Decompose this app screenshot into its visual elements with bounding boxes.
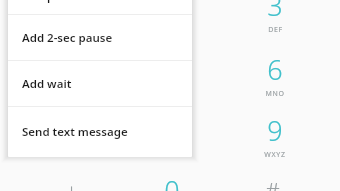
staticText: 9	[267, 112, 283, 149]
staticText: #	[265, 175, 280, 191]
staticText: Add wait	[22, 76, 72, 92]
staticText: 3	[267, 0, 283, 24]
staticText: Add 2-sec pause	[22, 30, 113, 46]
button[interactable]: 0	[164, 172, 180, 191]
button[interactable]: #	[265, 175, 280, 191]
button[interactable]: Send text message	[8, 107, 192, 156]
staticText: +	[65, 176, 78, 191]
staticText: MNO	[265, 89, 285, 97]
button[interactable]: +	[65, 176, 78, 191]
staticText: WXYZ	[264, 150, 286, 158]
button[interactable]: Add wait	[8, 61, 192, 106]
staticText: 6	[267, 51, 283, 88]
staticText: 0	[164, 172, 180, 191]
staticText: Send text message	[22, 124, 128, 140]
button[interactable]: 3	[267, 0, 283, 35]
staticText: DEF	[268, 25, 283, 35]
button[interactable]: Add 2-sec pause	[8, 15, 192, 60]
button[interactable]: 6	[265, 51, 285, 97]
staticText: Add pause	[22, 0, 81, 4]
button[interactable]: Add pause	[8, 0, 192, 14]
button[interactable]: 9	[264, 112, 286, 158]
